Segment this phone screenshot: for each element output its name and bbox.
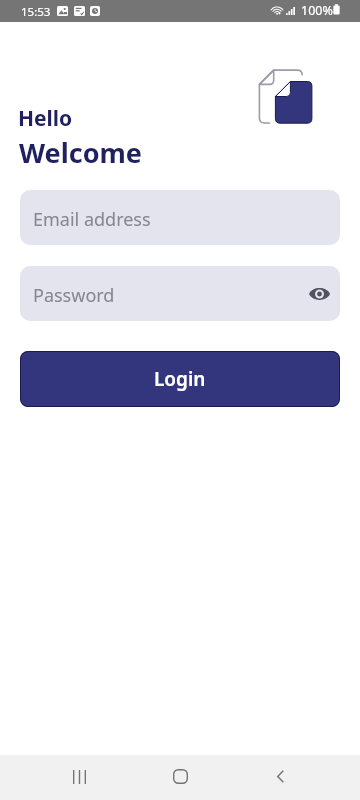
- button[interactable]: Email address: [20, 190, 340, 245]
- button[interactable]: Back: [256, 754, 304, 799]
- staticText: 100%: [301, 2, 333, 19]
- staticText: Email address: [33, 207, 151, 232]
- button[interactable]: Home: [156, 754, 204, 799]
- staticText: 15:53: [21, 4, 51, 20]
- button[interactable]: Password: [20, 266, 340, 321]
- staticText: Password: [33, 283, 115, 308]
- staticText: Welcome: [19, 134, 142, 171]
- staticText: Hello: [18, 104, 73, 133]
- staticText: Login: [154, 366, 206, 392]
- button[interactable]: Show password: [304, 279, 334, 309]
- button[interactable]: Login: [20, 351, 340, 407]
- button[interactable]: Recent apps: [55, 754, 103, 799]
